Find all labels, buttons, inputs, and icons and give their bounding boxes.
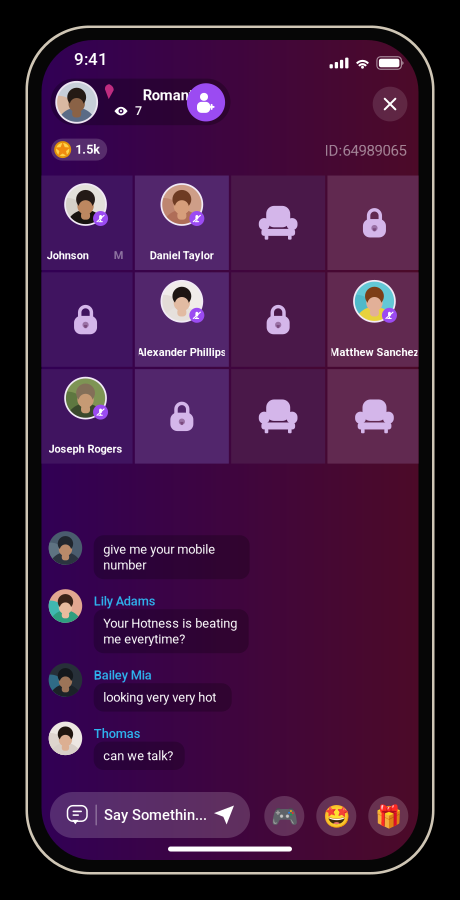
button[interactable]: 1.5k — [51, 139, 107, 161]
button[interactable]: Reactions — [316, 796, 356, 836]
button[interactable] — [327, 369, 421, 464]
button[interactable]: Alexander Phillips — [135, 272, 229, 367]
staticText: 🎮 — [271, 803, 298, 829]
button[interactable] — [231, 175, 325, 270]
staticText: Lily Adams — [94, 594, 156, 609]
button[interactable] — [135, 369, 229, 464]
staticText: Say Somethin... — [104, 806, 207, 824]
button[interactable]: Joseph Rogers — [39, 369, 133, 464]
button[interactable]: Johnson — [39, 175, 133, 270]
staticText: Alexander Phillips — [137, 346, 227, 359]
staticText: 🤩 — [323, 803, 350, 829]
button[interactable] — [231, 369, 325, 464]
staticText: Daniel Taylor — [150, 249, 214, 262]
staticText: Bailey Mia — [94, 668, 152, 683]
staticText: 7 — [135, 104, 142, 118]
staticText: Matthew Sanchez — [329, 346, 419, 359]
staticText: looking very very hot — [103, 690, 216, 705]
staticText: give me your mobile — [103, 542, 215, 557]
staticText: 1.5k — [75, 142, 100, 157]
staticText: ID:64989065 — [324, 142, 406, 159]
staticText: 9:41 — [74, 49, 108, 69]
staticText: Romantic K — [143, 86, 219, 104]
staticText: can we talk? — [103, 748, 173, 763]
button[interactable]: Close — [373, 87, 407, 121]
button[interactable]: Send gift — [368, 796, 408, 836]
staticText: Your Hotness is beating — [103, 616, 237, 631]
staticText: number — [103, 557, 146, 572]
button[interactable]: Romantic K — [50, 79, 230, 125]
staticText: 🎁 — [375, 803, 402, 829]
button[interactable]: Daniel Taylor — [135, 175, 229, 270]
staticText: M — [114, 249, 124, 262]
staticText: me everytime? — [103, 631, 185, 646]
staticText: Thomas — [94, 726, 141, 741]
staticText: Johnson — [47, 249, 89, 262]
button[interactable] — [39, 272, 133, 367]
staticText: Joseph Rogers — [49, 443, 123, 456]
button[interactable] — [327, 175, 421, 270]
button[interactable]: Games — [264, 796, 304, 836]
button[interactable]: Matthew Sanchez — [327, 272, 421, 367]
button[interactable] — [231, 272, 325, 367]
button[interactable]: Say Somethin... — [50, 792, 250, 838]
